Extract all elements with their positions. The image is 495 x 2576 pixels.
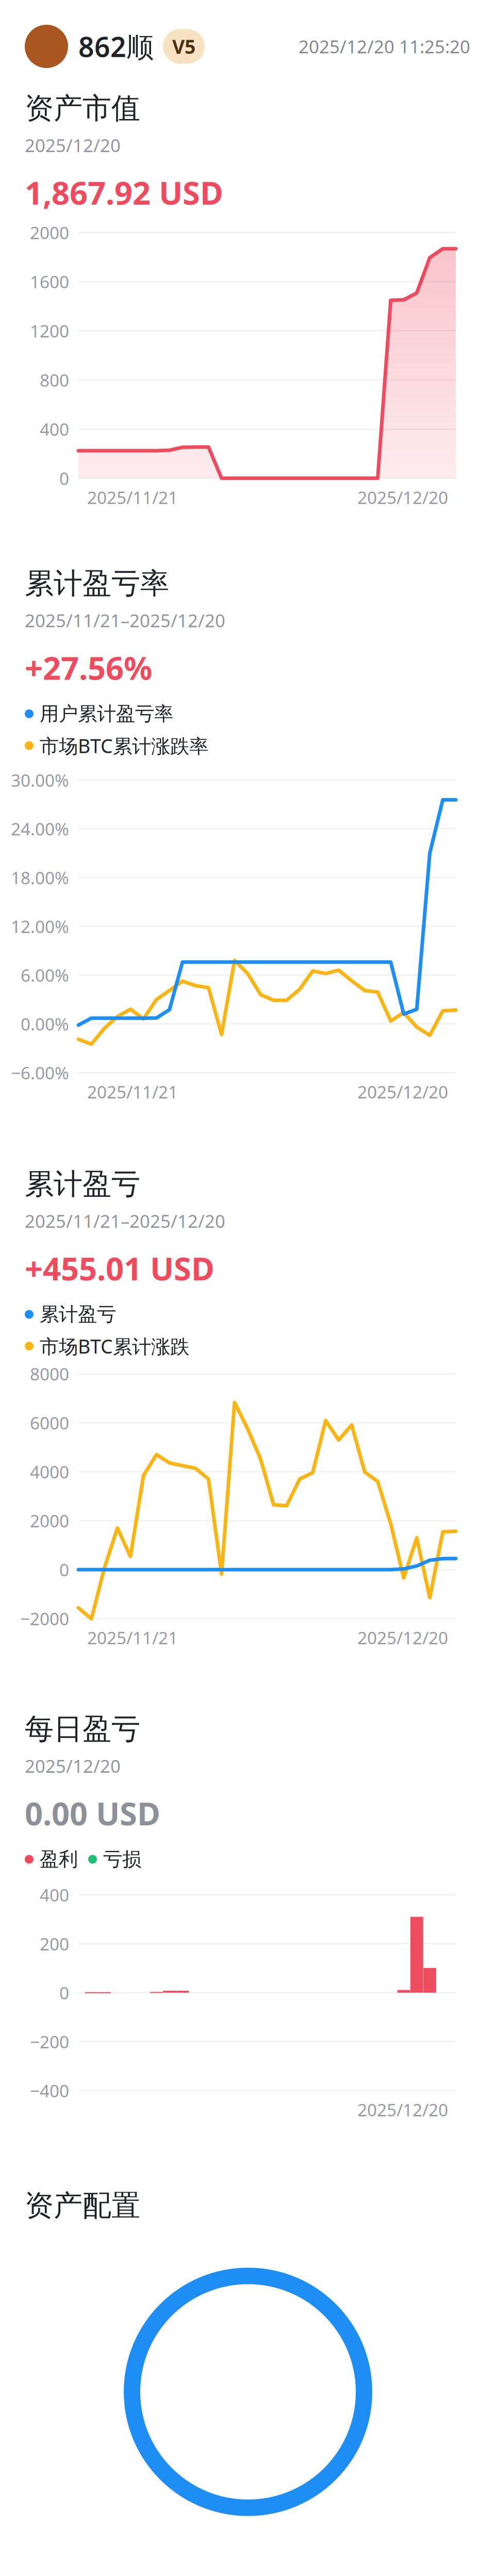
staticText: −6.00% xyxy=(11,1061,69,1084)
staticText: 2000 xyxy=(30,221,69,244)
staticText: 亏损 xyxy=(103,1847,141,1871)
staticText: 2025/11/21–2025/12/20 xyxy=(25,1209,225,1233)
staticText: 用户累计盈亏率 xyxy=(40,702,173,726)
button[interactable]: 862顺 xyxy=(25,25,205,68)
staticText: 2025/11/21 xyxy=(87,1080,178,1103)
staticText: 200 xyxy=(40,1932,69,1955)
staticText: 2025/12/20 xyxy=(357,486,448,509)
staticText: 6000 xyxy=(30,1411,69,1434)
staticText: 每日盈亏 xyxy=(25,1711,140,1747)
staticText: 0 xyxy=(59,1981,69,2004)
staticText: 0.00% xyxy=(21,1012,69,1035)
staticText: 12.00% xyxy=(11,915,69,938)
staticText: 2025/12/20 xyxy=(25,1754,121,1778)
staticText: 盈利 xyxy=(40,1847,78,1871)
staticText: 862顺 xyxy=(78,28,154,65)
staticText: −200 xyxy=(30,2030,69,2053)
staticText: 市场BTC累计涨跌 xyxy=(40,1333,189,1359)
staticText: 400 xyxy=(40,418,69,440)
staticText: 400 xyxy=(40,1883,69,1906)
staticText: 24.00% xyxy=(11,817,69,840)
staticText: 1200 xyxy=(30,319,69,342)
staticText: 0 xyxy=(59,1558,69,1581)
staticText: 累计盈亏 xyxy=(25,1166,140,1202)
staticText: 30.00% xyxy=(11,769,69,791)
staticText: 2025/12/20 xyxy=(357,1080,448,1103)
staticText: 2025/11/21–2025/12/20 xyxy=(25,609,225,632)
staticText: 市场BTC累计涨跌率 xyxy=(40,733,208,758)
staticText: 1,867.92 USD xyxy=(25,171,223,213)
staticText: +455.01 USD xyxy=(25,1247,214,1289)
staticText: −2000 xyxy=(20,1607,69,1630)
staticText: 2000 xyxy=(30,1509,69,1532)
staticText: 资产市值 xyxy=(25,91,140,126)
staticText: 2025/12/20 xyxy=(357,1626,448,1649)
staticText: 800 xyxy=(40,369,69,391)
staticText: 资产配置 xyxy=(25,2188,140,2223)
staticText: 0 xyxy=(59,467,69,490)
staticText: 2025/12/20 xyxy=(357,2098,448,2121)
staticText: 2025/11/21 xyxy=(87,486,178,509)
staticText: 2025/12/20 xyxy=(25,133,121,157)
staticText: 6.00% xyxy=(21,964,69,987)
staticText: 18.00% xyxy=(11,866,69,889)
staticText: 8000 xyxy=(30,1362,69,1385)
staticText: 累计盈亏率 xyxy=(25,566,169,601)
staticText: 1600 xyxy=(30,270,69,293)
staticText: +27.56% xyxy=(25,647,152,689)
staticText: 0.00 USD xyxy=(25,1792,160,1834)
staticText: V5 xyxy=(172,34,195,59)
staticText: 累计盈亏 xyxy=(40,1303,116,1326)
staticText: 2025/12/20 11:25:20 xyxy=(299,35,470,58)
staticText: 2025/11/21 xyxy=(87,1626,178,1649)
staticText: −400 xyxy=(30,2079,69,2102)
staticText: 4000 xyxy=(30,1460,69,1483)
